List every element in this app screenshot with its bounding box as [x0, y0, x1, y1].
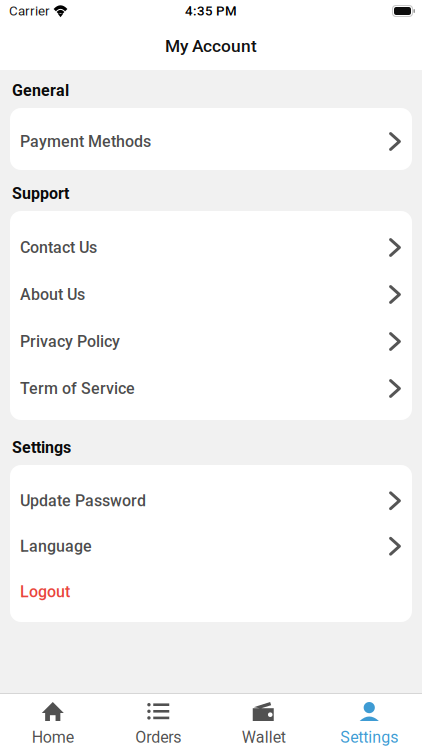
staticText: About Us	[20, 285, 85, 304]
staticText: Privacy Policy	[20, 332, 120, 351]
button[interactable]: Logout	[10, 569, 412, 614]
button[interactable]: Update Password	[10, 478, 412, 523]
staticText: Language	[20, 537, 92, 556]
staticText: 4:35 PM	[185, 3, 237, 19]
staticText: Home	[32, 728, 74, 747]
staticText: General	[12, 81, 69, 100]
button[interactable]: Home	[0, 694, 105, 750]
staticText: Contact Us	[20, 238, 97, 257]
button[interactable]: Settings	[316, 694, 422, 750]
button[interactable]: Contact Us	[10, 224, 412, 271]
staticText: Orders	[135, 728, 181, 747]
button[interactable]: Language	[10, 523, 412, 569]
button[interactable]: Wallet	[211, 694, 316, 750]
staticText: Settings	[340, 728, 398, 747]
staticText: Payment Methods	[20, 132, 151, 151]
staticText: Update Password	[20, 491, 146, 510]
button[interactable]: Payment Methods	[10, 118, 412, 165]
staticText: Term of Service	[20, 379, 135, 398]
staticText: Logout	[20, 582, 70, 601]
button[interactable]: Privacy Policy	[10, 318, 412, 365]
staticText: My Account	[165, 36, 257, 56]
button[interactable]: About Us	[10, 271, 412, 318]
button[interactable]: Term of Service	[10, 365, 412, 412]
staticText: Carrier	[9, 3, 50, 19]
staticText: Wallet	[242, 728, 286, 747]
button[interactable]: Orders	[105, 694, 211, 750]
staticText: Support	[12, 184, 69, 203]
staticText: Settings	[12, 438, 71, 457]
